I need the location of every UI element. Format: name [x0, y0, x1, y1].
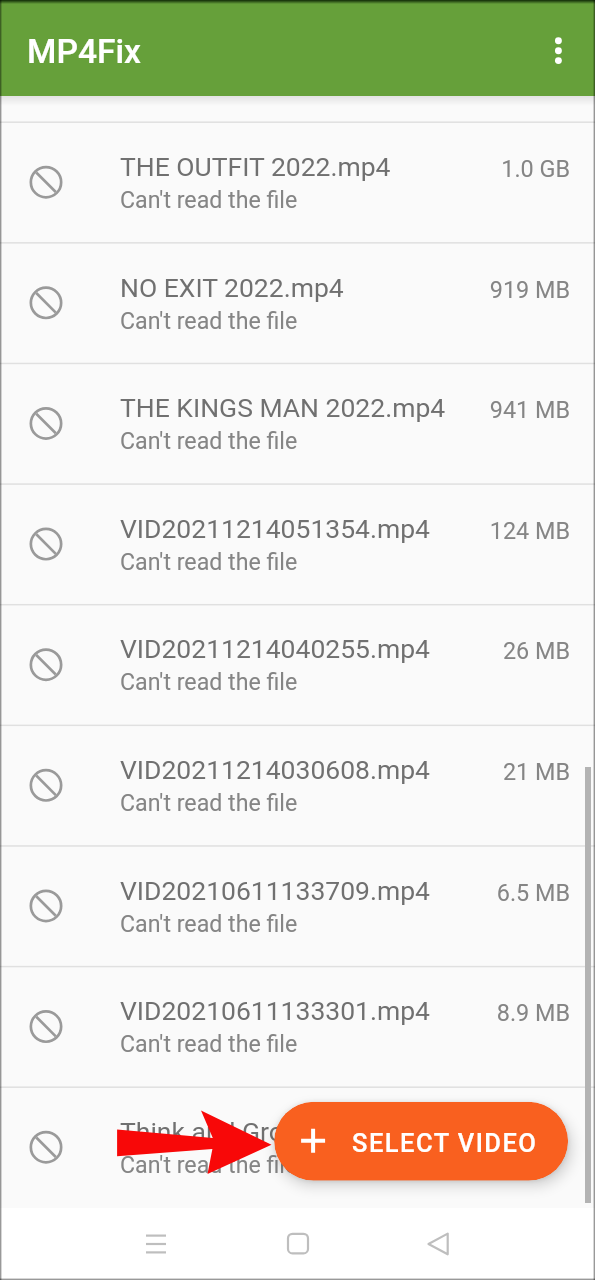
- staticText: Can't read the file: [120, 307, 298, 334]
- staticText: Can't read the file: [120, 427, 298, 454]
- button[interactable]: Recent apps: [136, 1224, 176, 1264]
- button[interactable]: VID20211214030608.mp4: [0, 726, 595, 847]
- staticText: NO EXIT 2022.mp4: [120, 272, 344, 303]
- staticText: THE OUTFIT 2022.mp4: [120, 151, 391, 182]
- button[interactable]: THE KINGS MAN 2022.mp4: [0, 364, 595, 485]
- staticText: 21 MB: [390, 758, 570, 785]
- staticText: VID20211214051354.mp4: [120, 513, 430, 544]
- button[interactable]: More options: [534, 16, 584, 84]
- staticText: Can't read the file: [120, 186, 298, 213]
- staticText: Think and Grow Rich.mp4: [120, 1116, 422, 1147]
- staticText: Can't read the file: [120, 789, 298, 816]
- staticText: 941 MB: [390, 396, 570, 423]
- staticText: MP4Fix: [27, 32, 141, 71]
- staticText: Can't read the file: [120, 1030, 298, 1057]
- staticText: Can't read the file: [120, 668, 298, 695]
- staticText: [390, 1120, 570, 1147]
- staticText: 124 MB: [390, 517, 570, 544]
- button[interactable]: Home: [278, 1224, 318, 1264]
- staticText: VID20210611133301.mp4: [120, 995, 430, 1026]
- button[interactable]: VID20211214040255.mp4: [0, 605, 595, 726]
- button[interactable]: [0, 2, 595, 123]
- button[interactable]: Back: [418, 1224, 458, 1264]
- button[interactable]: Think and Grow Rich.mp4: [0, 1088, 595, 1209]
- button[interactable]: VID20210611133301.mp4: [0, 967, 595, 1088]
- staticText: SELECT VIDEO: [352, 1128, 538, 1158]
- staticText: Can't read the file: [120, 1151, 298, 1178]
- button[interactable]: VID20210611133709.mp4: [0, 847, 595, 968]
- button[interactable]: NO EXIT 2022.mp4: [0, 244, 595, 365]
- button[interactable]: VID20211214051354.mp4: [0, 485, 595, 606]
- staticText: VID20211214040255.mp4: [120, 633, 430, 664]
- staticText: Can't read the file: [120, 548, 298, 575]
- button[interactable]: THE OUTFIT 2022.mp4: [0, 123, 595, 244]
- staticText: VID20210611133709.mp4: [120, 875, 430, 906]
- staticText: 6.5 MB: [390, 879, 570, 906]
- staticText: THE KINGS MAN 2022.mp4: [120, 392, 446, 423]
- staticText: VID20211214030608.mp4: [120, 754, 430, 785]
- staticText: Can't read the file: [120, 910, 298, 937]
- staticText: 919 MB: [390, 276, 570, 303]
- staticText: 1.0 GB: [390, 155, 570, 182]
- staticText: 26 MB: [390, 637, 570, 664]
- button[interactable]: SELECT VIDEO: [274, 1102, 568, 1181]
- staticText: 8.9 MB: [390, 999, 570, 1026]
